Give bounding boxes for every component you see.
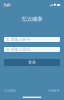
button[interactable]: 登录 bbox=[4, 59, 60, 66]
staticText: 请输入密码 bbox=[11, 47, 31, 52]
button[interactable]: 注册账号 bbox=[48, 89, 60, 92]
staticText: 9:41 bbox=[3, 2, 10, 8]
staticText: 登录 bbox=[28, 60, 36, 65]
button[interactable]: 忘记密码 bbox=[4, 89, 16, 92]
staticText: 忘记密码 bbox=[4, 89, 16, 92]
staticText: 请输入账号 bbox=[11, 37, 31, 42]
button[interactable]: 请输入密码 bbox=[4, 47, 60, 52]
staticText: 注册账号 bbox=[48, 89, 60, 92]
staticText: 忆云健康 bbox=[22, 16, 42, 22]
button[interactable]: 请输入账号 bbox=[4, 37, 60, 42]
